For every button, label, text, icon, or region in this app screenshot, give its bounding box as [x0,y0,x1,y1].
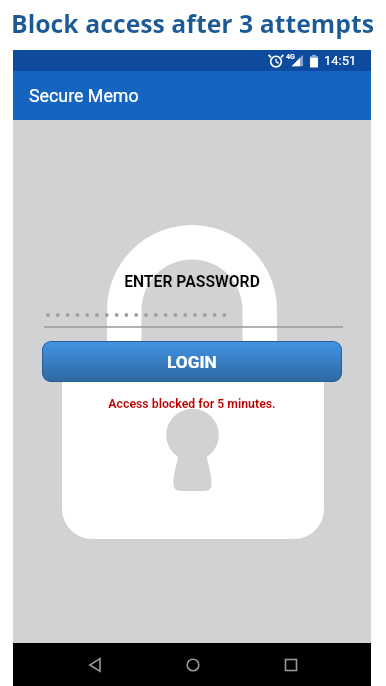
staticText: Access blocked for 5 minutes. [13,397,371,411]
staticText: ENTER PASSWORD [13,272,371,290]
button[interactable]: Recent apps [267,643,315,686]
staticText: Secure Memo [29,85,139,106]
staticText: Block access after 3 attempts [11,6,374,40]
button[interactable]: LOGIN [42,341,342,382]
staticText: LOGIN [167,352,217,372]
staticText: 14:51 [324,53,357,68]
button[interactable]: Back [70,643,118,686]
button[interactable]: Home [169,643,217,686]
staticText: 4G [286,53,295,61]
